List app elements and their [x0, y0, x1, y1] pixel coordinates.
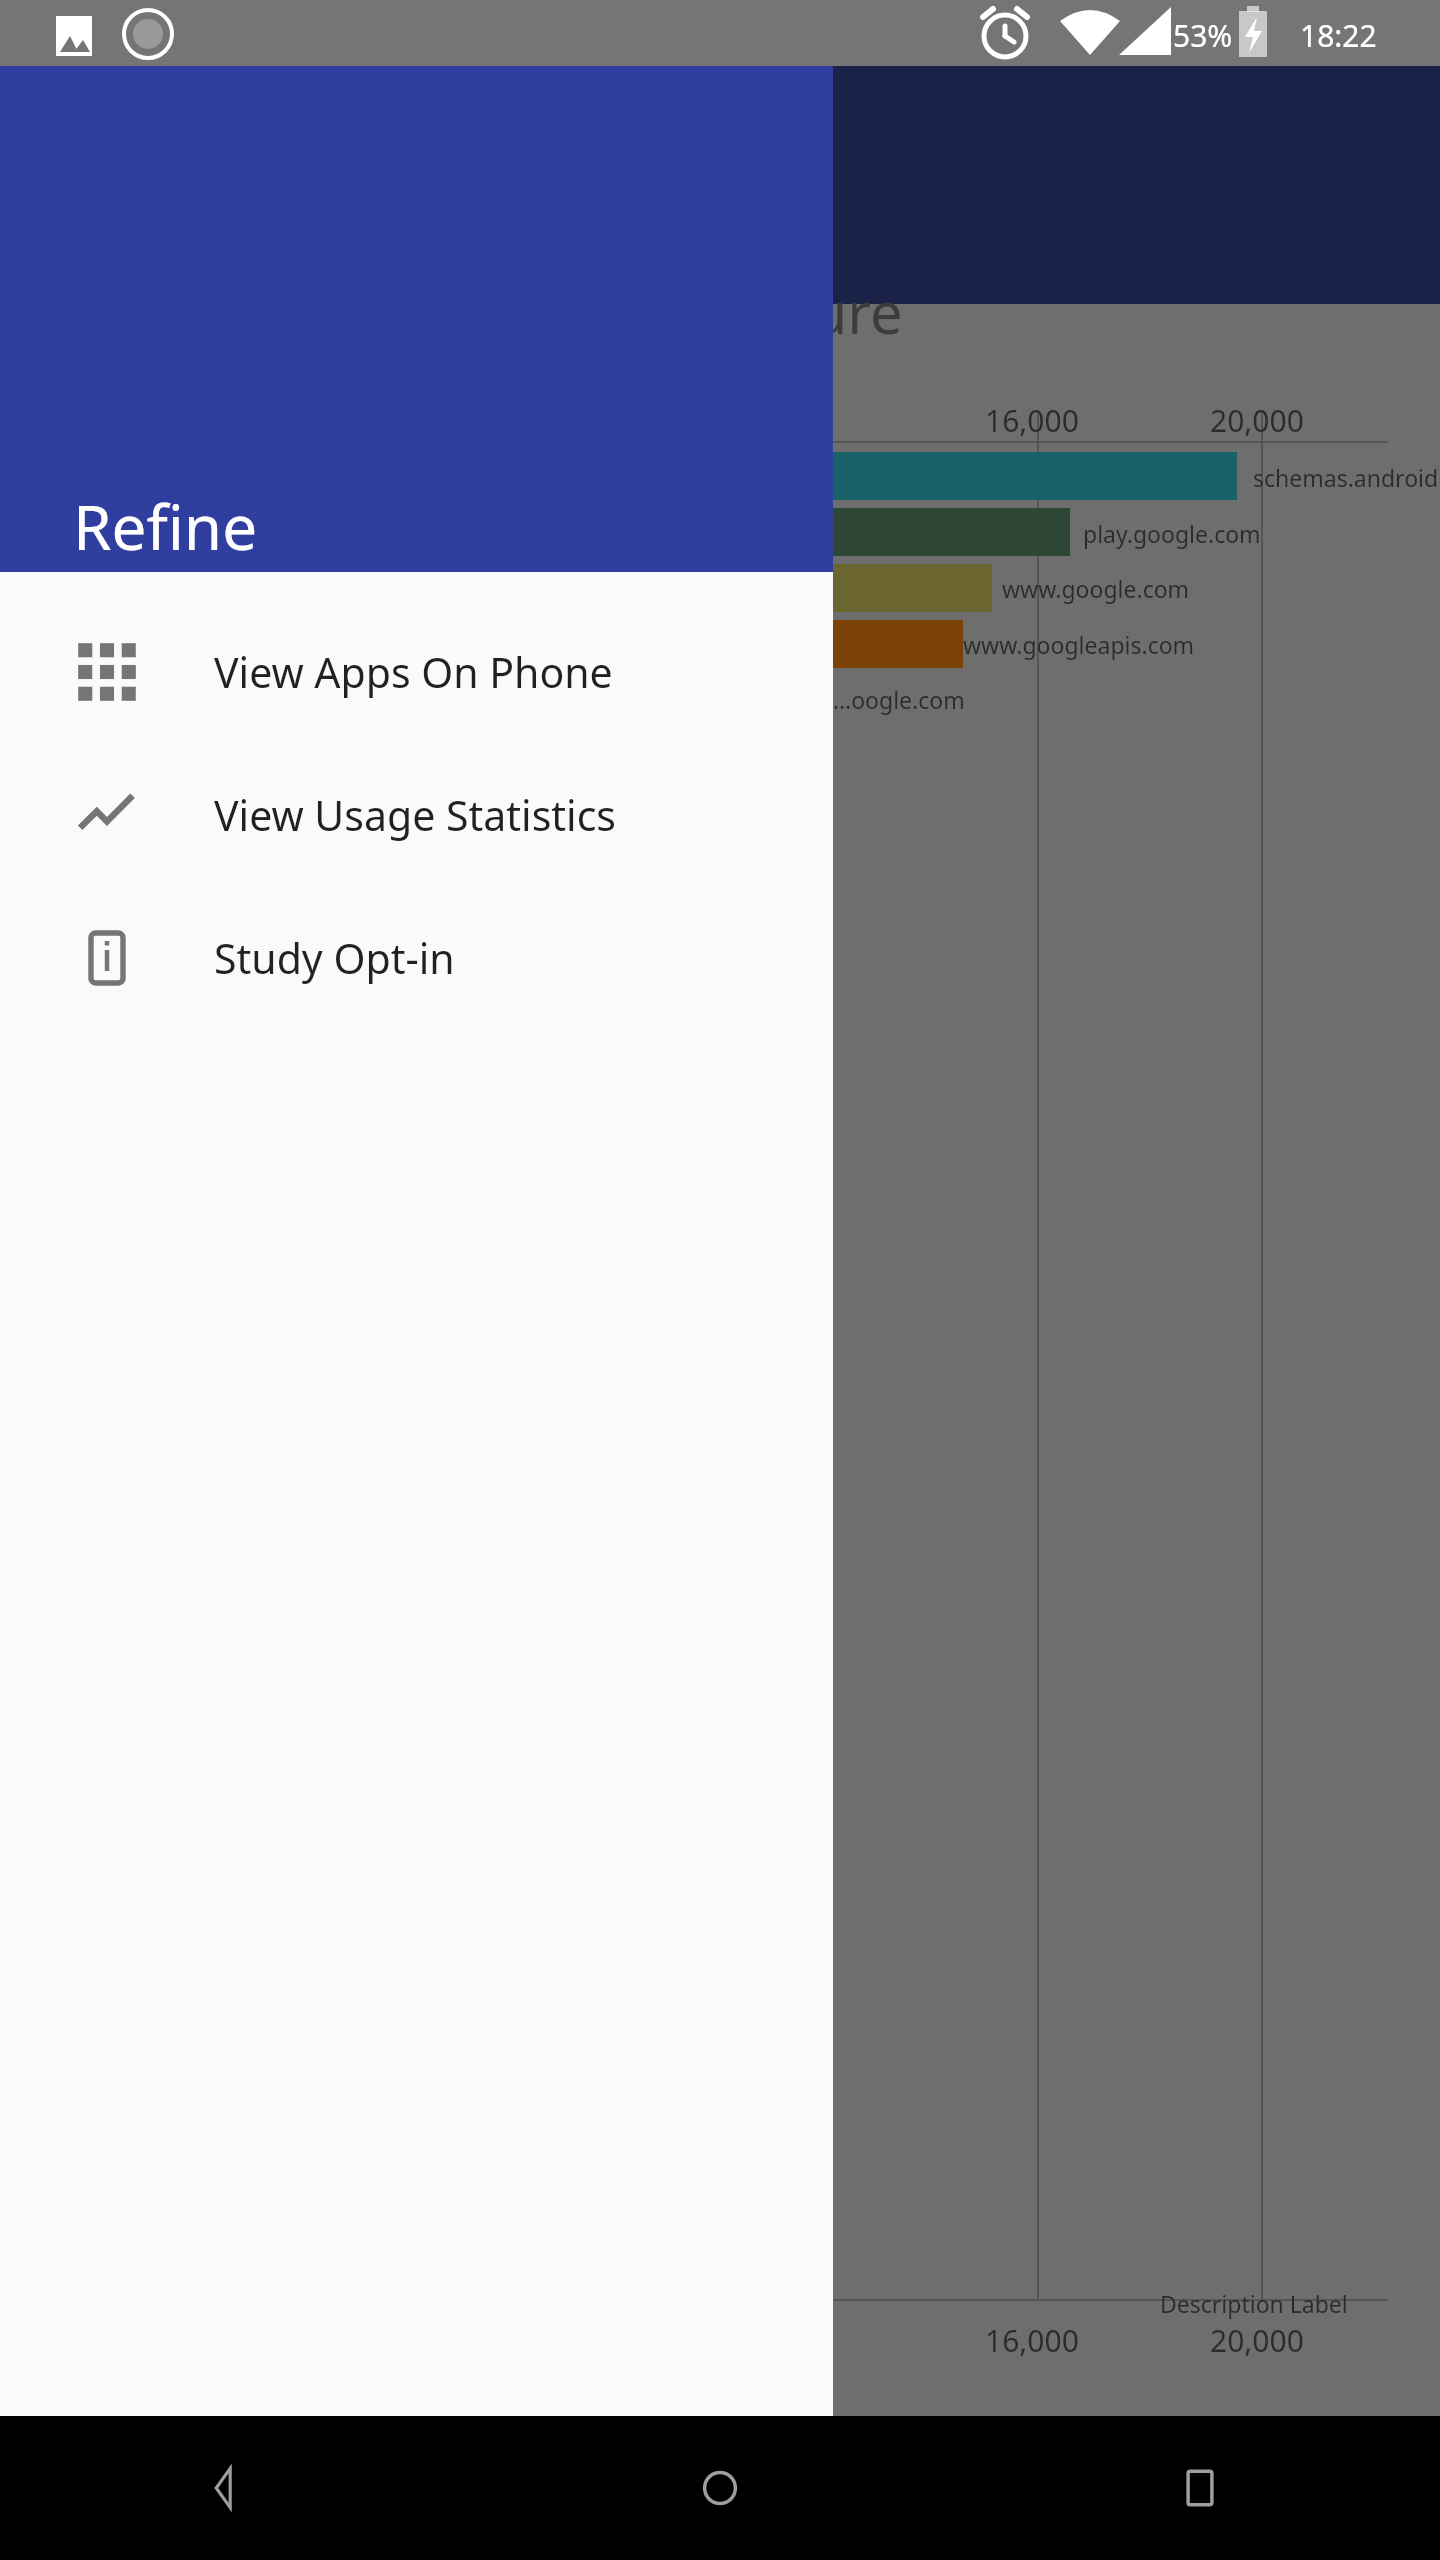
staticText: www.googleapis.com — [963, 629, 1195, 660]
staticText: Description Label — [1160, 2288, 1348, 2319]
button[interactable]: Home — [480, 2416, 960, 2560]
staticText: Study Opt-in — [214, 930, 455, 986]
staticText: 16,000 — [985, 400, 1079, 441]
staticText: …oogle.com — [833, 684, 965, 715]
button[interactable]: View Apps On Phone — [0, 600, 833, 743]
staticText: Exposure — [650, 272, 903, 351]
button[interactable]: Recents — [960, 2416, 1440, 2560]
staticText: View Apps On Phone — [214, 644, 613, 700]
staticText: 53% — [1173, 15, 1233, 56]
staticText: Refine — [73, 484, 258, 568]
staticText: play.google.com — [1083, 518, 1261, 549]
button[interactable]: Back — [0, 2416, 480, 2560]
button[interactable]: View Usage Statistics — [0, 743, 833, 886]
staticText: 20,000 — [1210, 400, 1304, 441]
staticText: View Usage Statistics — [214, 787, 617, 843]
staticText: www.google.com — [1002, 573, 1190, 604]
staticText: 20,000 — [1210, 2320, 1304, 2361]
staticText: 16,000 — [985, 2320, 1079, 2361]
button[interactable]: Study Opt-in — [0, 886, 833, 1029]
staticText: schemas.android.com — [1253, 462, 1440, 493]
staticText: 18:22 — [1300, 15, 1377, 56]
